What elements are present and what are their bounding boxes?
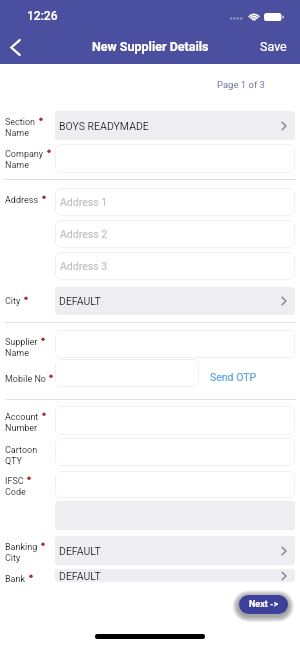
staticText: Address 2 [60, 228, 108, 240]
staticText: Section [5, 117, 36, 128]
button[interactable]: Page 1 of 3 [217, 79, 265, 90]
button[interactable]: DEFAULT [55, 287, 295, 315]
staticText: Number [5, 423, 38, 434]
staticText: Address 3 [60, 260, 108, 272]
staticText: QTY [5, 456, 22, 467]
staticText: Next -> [249, 599, 279, 610]
staticText: City [5, 553, 21, 564]
staticText: Banking [5, 542, 38, 553]
button[interactable]: DEFAULT [55, 569, 295, 582]
staticText: BOYS READYMADE [59, 120, 149, 132]
button[interactable]: Send OTP [204, 365, 263, 389]
button[interactable] [55, 330, 295, 358]
button[interactable] [55, 438, 295, 466]
staticText: Name [5, 128, 29, 139]
staticText: DEFAULT [59, 570, 101, 582]
staticText: IFSC [5, 476, 24, 487]
button[interactable] [55, 471, 295, 498]
staticText: Cartoon [5, 445, 38, 456]
button[interactable]: Back [1, 30, 29, 64]
button[interactable] [55, 144, 295, 173]
staticText: Send OTP [210, 371, 257, 383]
button[interactable]: Next -> [239, 595, 288, 614]
staticText: Address [5, 195, 39, 206]
staticText: 12:26 [27, 9, 58, 23]
button[interactable] [55, 406, 295, 435]
button[interactable]: Address 3 [55, 252, 295, 280]
staticText: New Supplier Details [92, 39, 209, 54]
staticText: DEFAULT [59, 295, 101, 307]
button[interactable]: Address 2 [55, 220, 295, 248]
staticText: Code [5, 487, 26, 498]
staticText: Address 1 [60, 196, 108, 208]
staticText: Company [5, 149, 44, 160]
staticText: Mobile No [5, 374, 46, 385]
button[interactable]: Save [246, 32, 300, 63]
button[interactable]: BOYS READYMADE [55, 111, 295, 140]
staticText: City [5, 296, 21, 307]
staticText: Supplier [5, 337, 38, 348]
staticText: Name [5, 160, 29, 171]
staticText: Save [260, 39, 287, 54]
staticText: Bank [5, 574, 26, 585]
staticText: Page 1 of 3 [217, 79, 265, 90]
button[interactable] [55, 359, 199, 387]
button[interactable]: DEFAULT [55, 536, 295, 565]
staticText: DEFAULT [59, 545, 101, 557]
staticText: Name [5, 348, 29, 359]
button[interactable]: Address 1 [55, 188, 295, 216]
staticText: Account [5, 412, 39, 423]
